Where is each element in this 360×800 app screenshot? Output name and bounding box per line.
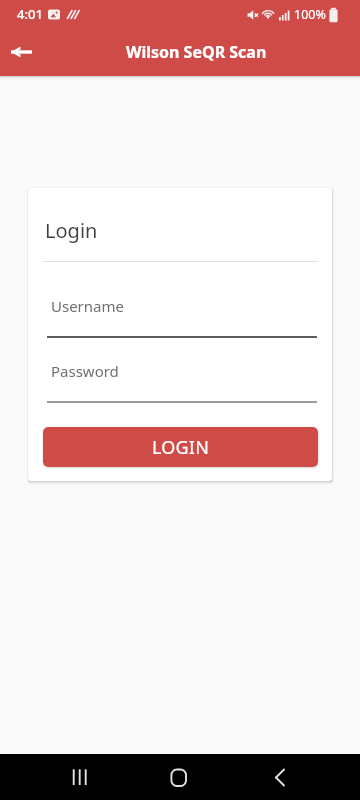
button[interactable]	[256, 754, 304, 800]
staticText: 4:01	[17, 5, 43, 23]
staticText: LOGIN	[152, 435, 210, 460]
button[interactable]	[0, 28, 44, 76]
staticText: Username	[51, 296, 124, 316]
button[interactable]: Username	[44, 286, 318, 338]
staticText: Password	[51, 361, 119, 381]
staticText: 100%	[294, 6, 326, 23]
button[interactable]: Password	[44, 350, 318, 403]
staticText: Wilson SeQR Scan	[126, 41, 267, 63]
button[interactable]	[155, 754, 203, 800]
button[interactable]: LOGIN	[43, 427, 318, 467]
button[interactable]	[56, 754, 104, 800]
staticText: Login	[45, 217, 98, 244]
